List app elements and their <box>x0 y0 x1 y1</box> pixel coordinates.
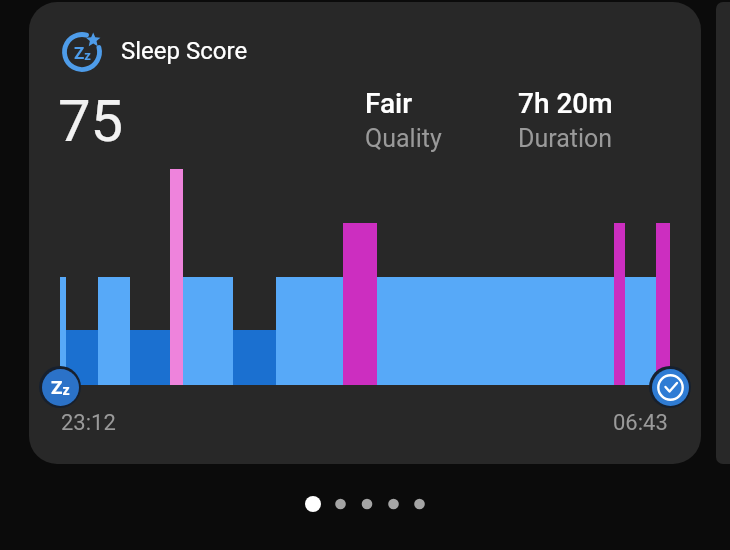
staticText: 75 <box>58 87 124 155</box>
staticText: Duration <box>518 124 613 153</box>
button[interactable] <box>29 2 701 464</box>
staticText: Fair <box>365 87 413 120</box>
staticText: 06:43 <box>613 410 668 436</box>
staticText: Quality <box>365 124 442 153</box>
staticText: Zz <box>51 376 70 399</box>
staticText: 7h 20m <box>518 87 613 120</box>
staticText: 23:12 <box>61 410 116 436</box>
staticText: Zz <box>74 43 91 63</box>
staticText: Sleep Score <box>121 37 248 65</box>
